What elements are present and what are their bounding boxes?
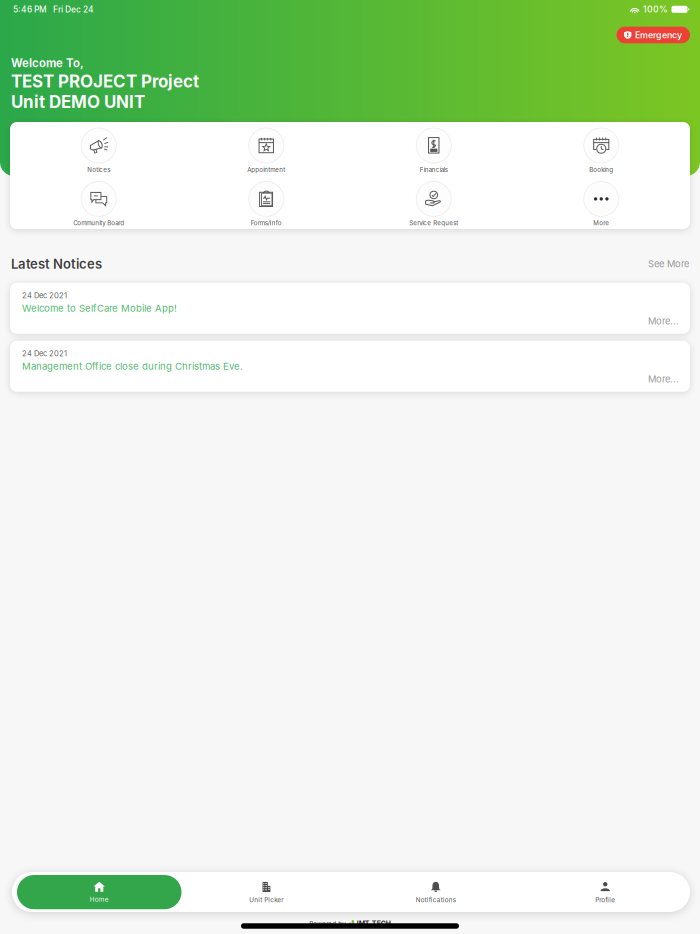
- staticText: IMT TECH: [357, 920, 391, 928]
- staticText: Forms/Info: [251, 219, 282, 227]
- staticText: 24 Dec 2021: [22, 349, 67, 358]
- staticText: Latest Notices: [11, 256, 102, 272]
- staticText: Emergency: [635, 30, 682, 40]
- staticText: More...: [648, 373, 679, 385]
- button[interactable]: Forms/Info: [182, 181, 350, 227]
- button[interactable]: Service Request: [350, 181, 517, 227]
- button[interactable]: Notices: [15, 128, 182, 173]
- staticText: 24 Dec 2021: [22, 291, 67, 300]
- staticText: Management Office close during Christmas…: [22, 360, 243, 372]
- staticText: Welcome to SelfCare Mobile App!: [22, 302, 177, 314]
- staticText: Unit Picker: [249, 896, 283, 904]
- button[interactable]: Booking: [517, 128, 685, 173]
- staticText: Welcome To,: [11, 56, 84, 70]
- staticText: More: [593, 219, 609, 227]
- staticText: Financials: [420, 166, 448, 173]
- staticText: 5:46 PM Fri Dec 24: [13, 4, 94, 14]
- staticText: Home: [90, 895, 109, 903]
- button[interactable]: Financials: [350, 128, 517, 173]
- button[interactable]: Community Board: [15, 181, 182, 227]
- staticText: More...: [648, 315, 679, 327]
- staticText: Notifications: [416, 896, 456, 904]
- staticText: 100%: [643, 4, 668, 15]
- button[interactable]: Notifications: [351, 873, 520, 911]
- staticText: Profile: [595, 896, 615, 904]
- button[interactable]: Emergency: [616, 27, 690, 43]
- button[interactable]: Profile: [520, 873, 690, 911]
- staticText: TEST PROJECT Project: [11, 71, 199, 91]
- staticText: Notices: [87, 166, 110, 173]
- staticText: Powered by: [309, 920, 346, 928]
- staticText: Community Board: [73, 219, 124, 227]
- staticText: Booking: [589, 166, 613, 173]
- button[interactable]: 24 Dec 2021: [10, 341, 690, 392]
- button[interactable]: 24 Dec 2021: [10, 283, 690, 334]
- button[interactable]: More: [517, 181, 685, 227]
- staticText: Unit DEMO UNIT: [11, 91, 145, 112]
- button[interactable]: Appointment: [182, 128, 350, 173]
- staticText: Service Request: [409, 219, 458, 227]
- button[interactable]: See More: [648, 258, 689, 270]
- staticText: Appointment: [247, 166, 285, 173]
- button[interactable]: Home: [12, 872, 181, 912]
- button[interactable]: Unit Picker: [181, 873, 351, 911]
- staticText: See More: [648, 258, 689, 270]
